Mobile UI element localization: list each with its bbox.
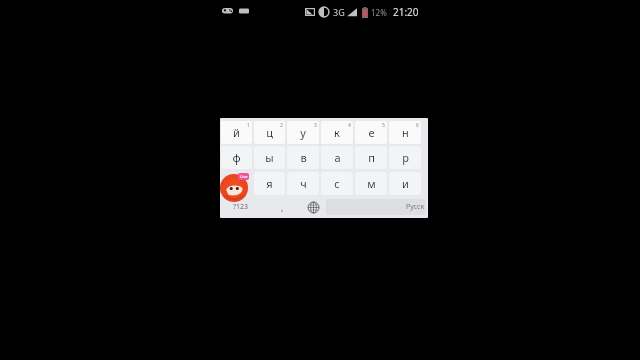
staticText: р — [402, 150, 409, 165]
staticText: я — [266, 176, 273, 191]
button[interactable]: и — [389, 172, 421, 195]
staticText: 21:20 — [393, 5, 419, 19]
staticText: 3 — [314, 122, 317, 129]
staticText: 12% — [371, 7, 387, 18]
button[interactable]: ?123 — [221, 198, 261, 216]
button[interactable]: ы — [254, 146, 285, 169]
staticText: и — [402, 176, 409, 191]
staticText: н — [402, 125, 409, 140]
button[interactable]: к — [321, 121, 353, 144]
button[interactable]: в — [287, 146, 319, 169]
button[interactable]: Switch language — [302, 197, 324, 217]
button[interactable]: ц — [254, 121, 285, 144]
staticText: 4 — [348, 122, 351, 129]
button[interactable]: н — [389, 121, 421, 144]
button[interactable]: п — [355, 146, 387, 169]
staticText: п — [368, 150, 375, 165]
staticText: м — [367, 176, 376, 191]
staticText: Live — [240, 174, 248, 179]
staticText: 1 — [247, 122, 250, 129]
button[interactable]: м — [355, 172, 387, 195]
button[interactable]: я — [254, 172, 285, 195]
staticText: а — [334, 150, 341, 165]
button[interactable]: е — [355, 121, 387, 144]
staticText: Русск — [406, 202, 425, 212]
staticText: ?123 — [233, 202, 249, 212]
button[interactable]: ф — [221, 146, 252, 169]
staticText: ч — [300, 176, 307, 191]
staticText: у — [300, 125, 306, 140]
staticText: 2 — [280, 122, 283, 129]
button[interactable]: с — [321, 172, 353, 195]
button[interactable]: Русск — [326, 199, 426, 215]
staticText: ф — [232, 150, 241, 165]
button[interactable]: р — [389, 146, 421, 169]
staticText: 3G — [333, 6, 345, 18]
button[interactable] — [220, 170, 253, 196]
button[interactable]: Game assistant bubble — [219, 173, 249, 203]
button[interactable]: а — [321, 146, 353, 169]
staticText: к — [334, 125, 340, 140]
staticText: в — [300, 150, 307, 165]
button[interactable]: й — [221, 121, 252, 144]
staticText: е — [368, 125, 375, 140]
staticText: 5 — [382, 122, 385, 129]
staticText: , — [281, 201, 284, 213]
button[interactable]: у — [287, 121, 319, 144]
staticText: ы — [265, 150, 274, 165]
staticText: ц — [266, 125, 273, 140]
button[interactable]: ч — [287, 172, 319, 195]
staticText: 6 — [416, 122, 419, 129]
staticText: с — [334, 176, 340, 191]
staticText: й — [233, 125, 240, 140]
button[interactable]: , — [262, 197, 302, 217]
